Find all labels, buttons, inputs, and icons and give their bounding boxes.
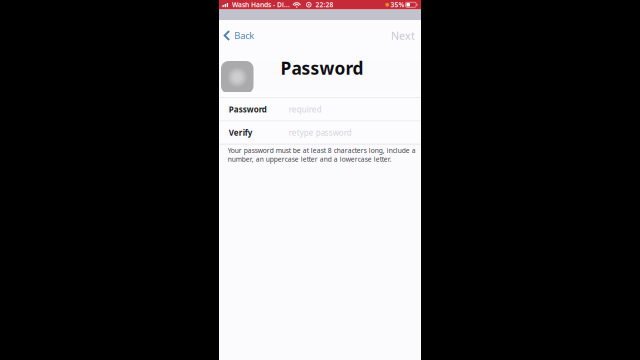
button[interactable]: Password bbox=[219, 98, 421, 121]
staticText: Password bbox=[229, 104, 267, 115]
button[interactable]: Next bbox=[381, 20, 421, 48]
button[interactable]: Verify bbox=[219, 121, 421, 144]
button[interactable]: Back bbox=[219, 20, 262, 48]
staticText: 35% bbox=[391, 0, 405, 9]
staticText: Next bbox=[391, 28, 415, 43]
staticText: Your password must be at least 8 charact… bbox=[228, 146, 416, 164]
staticText: 22:28 bbox=[316, 0, 334, 9]
staticText: Password bbox=[280, 56, 363, 79]
staticText: Back bbox=[234, 29, 254, 42]
staticText: Wash Hands - Di... bbox=[232, 0, 290, 9]
staticText: retype password bbox=[289, 127, 352, 138]
staticText: Verify bbox=[229, 127, 253, 138]
staticText: required bbox=[289, 104, 322, 115]
